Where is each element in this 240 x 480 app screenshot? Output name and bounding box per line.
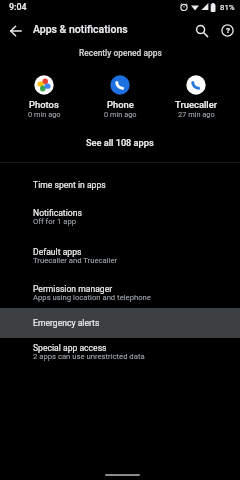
button[interactable]: Emergency alerts bbox=[0, 308, 240, 338]
staticText: Emergency alerts bbox=[33, 318, 100, 328]
staticText: ? bbox=[226, 26, 230, 35]
button[interactable]: Photos bbox=[6, 75, 82, 119]
button[interactable]: See all 108 apps bbox=[0, 133, 240, 152]
staticText: 27 min ago bbox=[178, 110, 215, 119]
staticText: Truecaller bbox=[175, 99, 218, 110]
button[interactable]: Special app access bbox=[0, 335, 240, 369]
staticText: Apps using location and telephone bbox=[33, 293, 151, 302]
staticText: Photos bbox=[29, 99, 59, 110]
staticText: Time spent in apps bbox=[33, 180, 106, 190]
staticText: 2 apps can use unrestricted data bbox=[33, 352, 145, 361]
staticText: 0 min ago bbox=[104, 110, 137, 119]
button[interactable]: Time spent in apps bbox=[0, 170, 240, 200]
button[interactable]: ? bbox=[216, 19, 239, 42]
staticText: 0 min ago bbox=[28, 110, 61, 119]
staticText: 81% bbox=[220, 3, 235, 12]
button[interactable] bbox=[4, 19, 28, 43]
staticText: See all 108 apps bbox=[86, 137, 154, 148]
staticText: Permission manager bbox=[33, 284, 113, 294]
button[interactable]: Phone bbox=[82, 75, 158, 119]
button[interactable] bbox=[190, 19, 213, 42]
staticText: Phone bbox=[107, 99, 134, 110]
button[interactable]: Permission manager bbox=[0, 276, 240, 310]
button[interactable]: Truecaller bbox=[158, 75, 234, 119]
staticText: Truecaller and Truecaller bbox=[33, 256, 118, 265]
button[interactable]: Default apps bbox=[0, 239, 240, 273]
staticText: 9:04 bbox=[9, 2, 27, 12]
staticText: Off for 1 app bbox=[33, 217, 77, 226]
staticText: Special app access bbox=[33, 343, 107, 353]
staticText: Apps & notifications bbox=[33, 23, 128, 35]
staticText: Notifications bbox=[33, 208, 82, 218]
staticText: Recently opened apps bbox=[79, 48, 162, 58]
staticText: Default apps bbox=[33, 247, 82, 257]
button[interactable]: Notifications bbox=[0, 200, 240, 234]
